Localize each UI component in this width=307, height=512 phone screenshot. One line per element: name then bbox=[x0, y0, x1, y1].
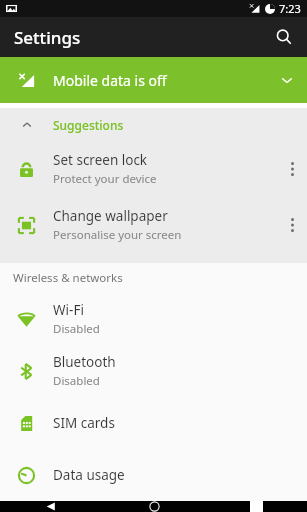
button[interactable]: Search bbox=[267, 20, 301, 54]
staticText: Personalise your screen bbox=[53, 227, 182, 243]
button[interactable]: Wi-Fi bbox=[0, 293, 307, 345]
button[interactable]: Set screen lock bbox=[0, 141, 307, 197]
button[interactable]: SIM cards bbox=[0, 397, 307, 449]
staticText: Change wallpaper bbox=[53, 207, 168, 225]
button[interactable]: Mobile data is off bbox=[0, 57, 307, 103]
button[interactable]: Bluetooth bbox=[0, 345, 307, 397]
button[interactable]: More options bbox=[277, 197, 307, 253]
button[interactable]: Home bbox=[103, 501, 205, 512]
button[interactable]: More options bbox=[277, 141, 307, 197]
button[interactable]: Suggestions bbox=[0, 108, 307, 141]
staticText: Wireless & networks bbox=[13, 270, 123, 286]
staticText: Set screen lock bbox=[53, 151, 148, 169]
button[interactable]: Change wallpaper bbox=[0, 197, 307, 253]
staticText: Protect your device bbox=[53, 171, 157, 187]
button[interactable]: Data usage bbox=[0, 449, 307, 501]
button[interactable]: Back bbox=[0, 501, 103, 512]
staticText: Suggestions bbox=[53, 117, 124, 133]
staticText: Mobile data is off bbox=[53, 71, 267, 90]
button[interactable]: Recents bbox=[205, 501, 307, 512]
staticText: Bluetooth bbox=[53, 353, 116, 371]
staticText: SIM cards bbox=[53, 414, 115, 432]
staticText: Disabled bbox=[53, 321, 100, 337]
staticText: Data usage bbox=[53, 466, 125, 484]
staticText: Disabled bbox=[53, 373, 100, 389]
staticText: 7:23 bbox=[279, 1, 301, 16]
staticText: Settings bbox=[14, 26, 81, 49]
staticText: Wi-Fi bbox=[53, 301, 84, 319]
